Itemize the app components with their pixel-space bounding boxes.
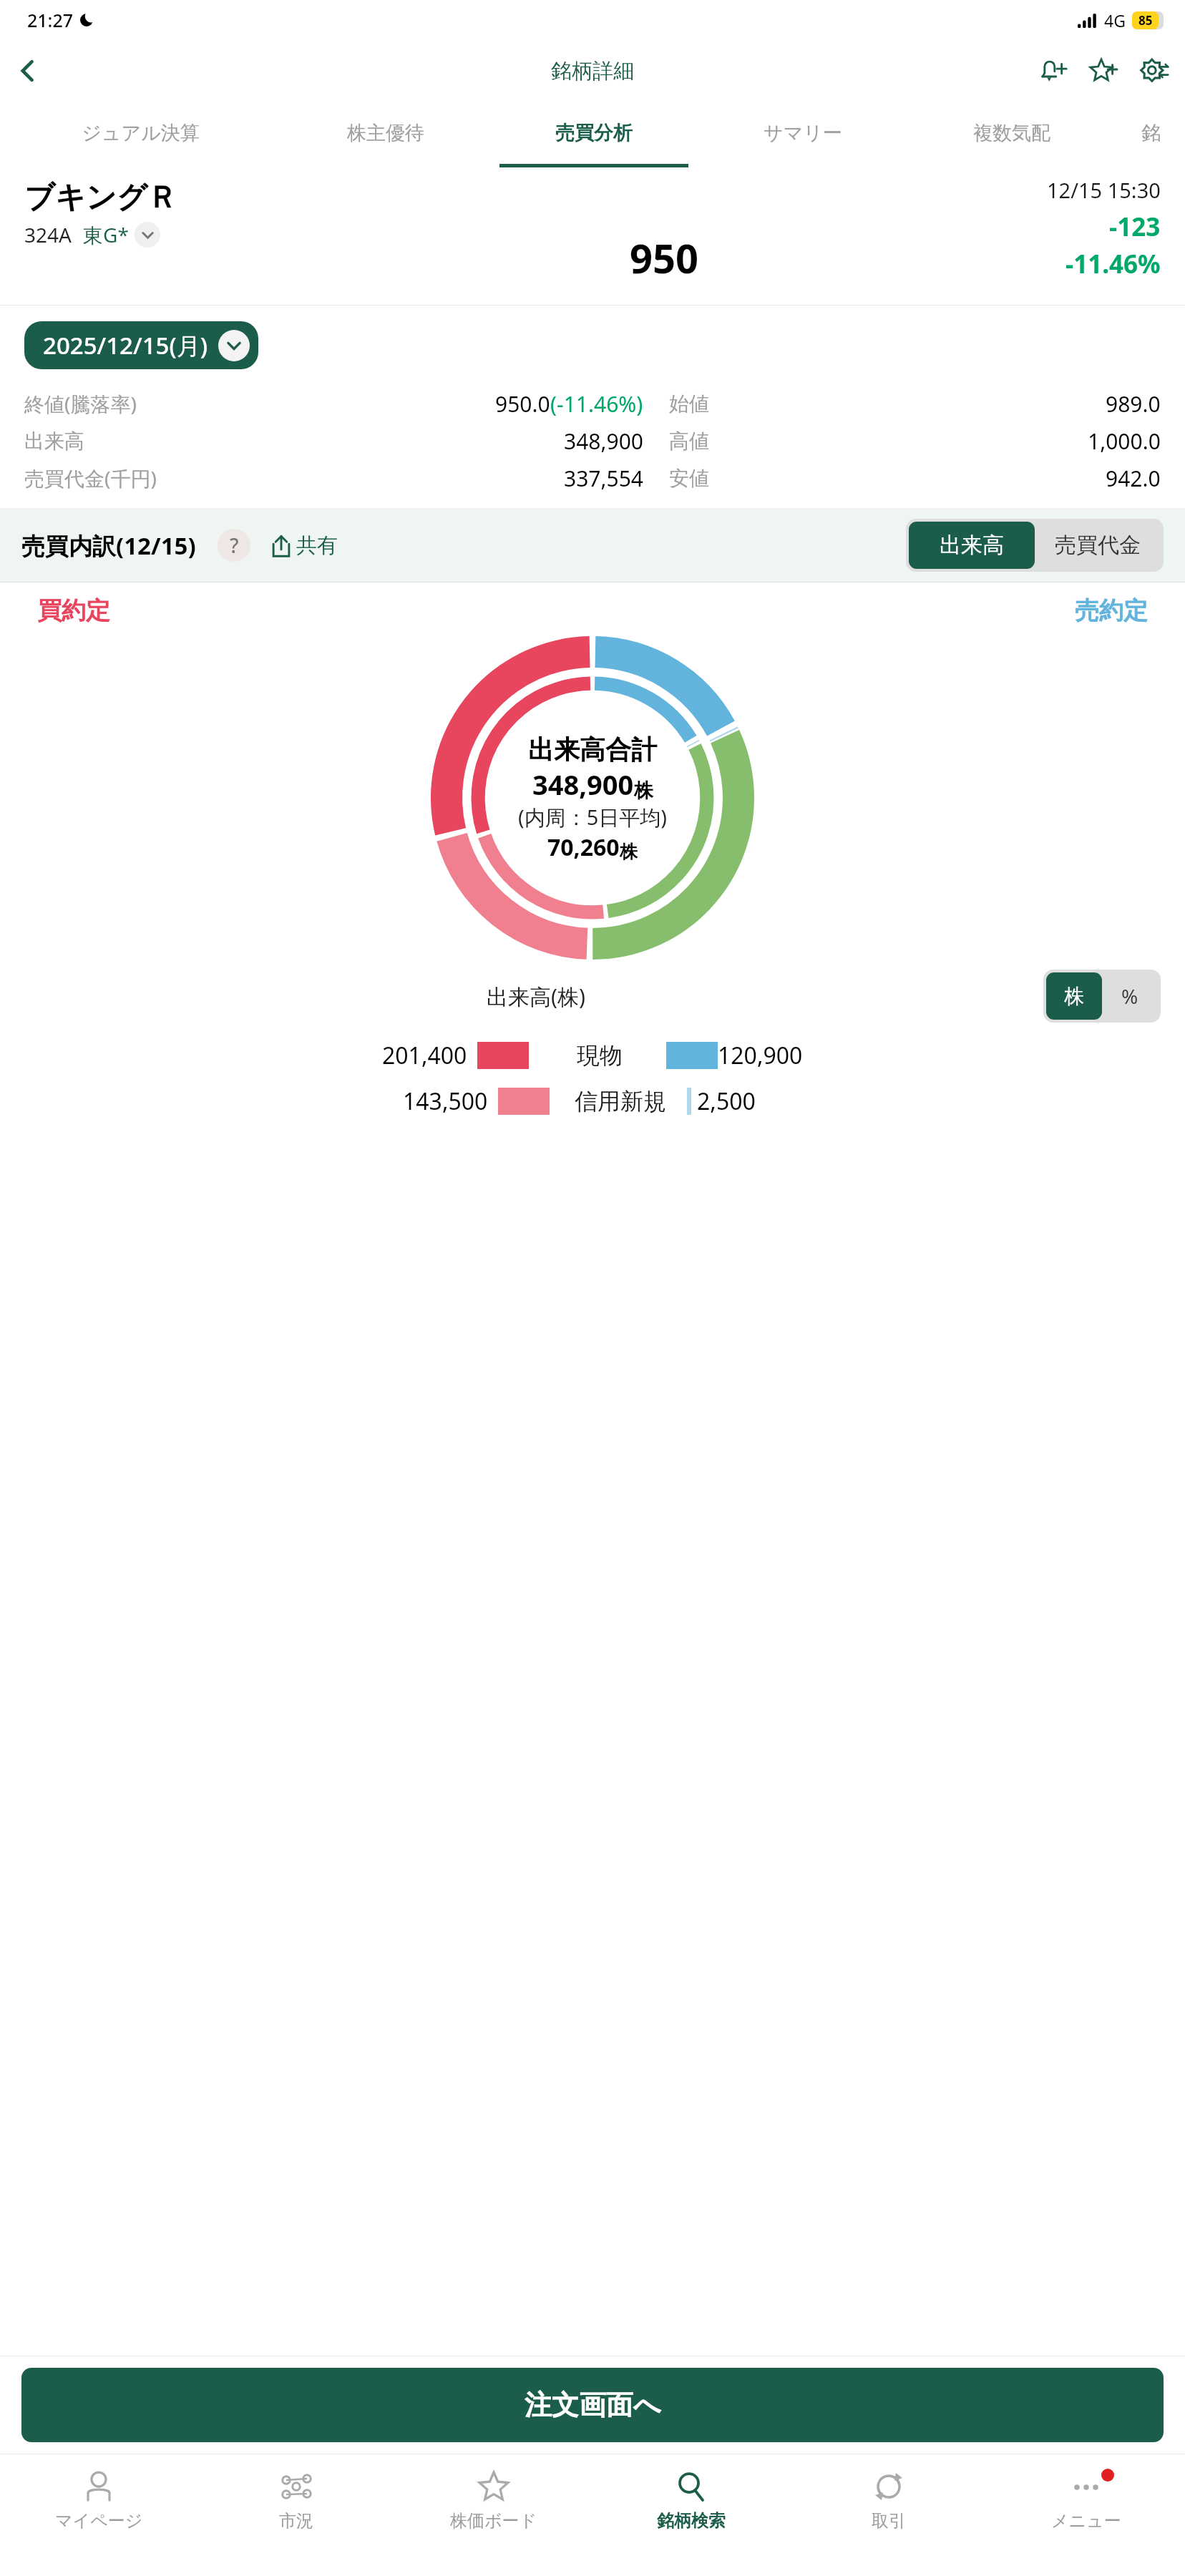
staticText: 出来高 xyxy=(24,429,239,454)
staticText: 終値(騰落率) xyxy=(24,390,239,417)
button[interactable]: ジュアル決算 xyxy=(0,102,281,167)
staticText: 2025/12/15(月) xyxy=(43,329,208,361)
staticText: 348,900 xyxy=(532,766,634,803)
staticText: ジュアル決算 xyxy=(82,121,200,145)
staticText: 株 xyxy=(620,841,638,863)
staticText: 942.0 xyxy=(1106,464,1161,493)
staticText: メニュー xyxy=(1051,2510,1121,2532)
staticText: 買約定 xyxy=(37,595,110,626)
staticText: 現物 xyxy=(577,1041,623,1070)
button[interactable]: 出来高 xyxy=(909,522,1035,569)
staticText: 989.0 xyxy=(1106,389,1161,419)
staticText: 85 xyxy=(1138,12,1153,29)
staticText: 東G* xyxy=(83,221,129,248)
staticText: 1,000.0 xyxy=(1088,426,1161,456)
button[interactable]: 株 xyxy=(1046,972,1102,1020)
staticText: 70,260 xyxy=(547,831,620,863)
button[interactable]: 複数気配 xyxy=(907,102,1116,167)
staticText: 銘柄検索 xyxy=(657,2510,726,2532)
button[interactable]: メニュー xyxy=(987,2454,1185,2576)
staticText: 市況 xyxy=(279,2510,313,2532)
button[interactable]: マイページ xyxy=(0,2454,197,2576)
staticText: (内周：5日平均) xyxy=(518,803,667,831)
button[interactable]: 注文画面へ xyxy=(21,2368,1164,2442)
button[interactable]: 取引 xyxy=(790,2454,987,2576)
button[interactable]: Add to watchlist xyxy=(1082,49,1126,93)
button[interactable]: 売買分析 xyxy=(489,102,698,167)
staticText: 348,900 xyxy=(564,426,643,456)
staticText: 950.0 xyxy=(495,389,550,419)
staticText: 株 xyxy=(1064,984,1084,1009)
staticText: 高値 xyxy=(669,429,776,454)
staticText: 信用新規 xyxy=(575,1087,666,1116)
staticText: 337,554 xyxy=(564,464,643,493)
staticText: ブキングＲ xyxy=(24,179,177,217)
staticText: 安値 xyxy=(669,466,776,491)
staticText: ? xyxy=(230,532,239,559)
staticText: 4G xyxy=(1104,9,1126,31)
staticText: -11.46% xyxy=(1065,247,1161,281)
staticText: 324A xyxy=(24,221,72,248)
staticText: 21:27 xyxy=(27,8,74,32)
staticText: -123 xyxy=(1109,210,1161,244)
staticText: 143,500 xyxy=(403,1085,488,1117)
button[interactable]: 株価ボード xyxy=(395,2454,592,2576)
button[interactable]: 株主優待 xyxy=(281,102,489,167)
staticText: 12/15 15:30 xyxy=(1047,176,1161,204)
staticText: マイページ xyxy=(55,2510,143,2532)
button[interactable]: % xyxy=(1102,972,1158,1020)
button[interactable]: 共有 xyxy=(265,528,342,563)
button[interactable]: Price alert xyxy=(1032,49,1076,93)
staticText: 売買代金 xyxy=(1055,532,1141,559)
button[interactable]: 売買代金 xyxy=(1035,522,1161,569)
button[interactable]: 市況 xyxy=(197,2454,395,2576)
staticText: 銘 xyxy=(1141,121,1161,145)
staticText: 株主優待 xyxy=(347,121,424,145)
staticText: 950 xyxy=(630,230,699,285)
staticText: 共有 xyxy=(296,532,338,559)
button[interactable]: サマリー xyxy=(698,102,907,167)
staticText: 売買代金(千円) xyxy=(24,464,239,492)
staticText: 銘柄詳細 xyxy=(551,58,634,84)
button[interactable]: 銘 xyxy=(1116,102,1185,167)
staticText: 出来高 xyxy=(940,532,1004,559)
staticText: 株 xyxy=(634,779,653,803)
button[interactable]: 2025/12/15(月) xyxy=(24,321,258,369)
staticText: 売買分析 xyxy=(555,121,633,145)
staticText: 株価ボード xyxy=(450,2510,537,2532)
staticText: 出来高(株) xyxy=(487,982,585,1011)
staticText: (-11.46%) xyxy=(550,389,643,419)
staticText: 120,900 xyxy=(718,1040,803,1071)
button[interactable]: 銘柄検索 xyxy=(592,2454,790,2576)
button[interactable]: Market info xyxy=(135,222,160,248)
staticText: 注文画面へ xyxy=(525,2388,661,2422)
button[interactable]: Help xyxy=(218,529,250,562)
staticText: 複数気配 xyxy=(973,121,1050,145)
staticText: 始値 xyxy=(669,391,776,416)
staticText: 売約定 xyxy=(1075,595,1148,626)
button[interactable]: Back xyxy=(7,50,49,92)
staticText: 取引 xyxy=(872,2510,906,2532)
staticText: 201,400 xyxy=(382,1040,467,1071)
staticText: サマリー xyxy=(764,121,842,145)
staticText: % xyxy=(1121,982,1138,1010)
staticText: 2,500 xyxy=(697,1085,756,1117)
button[interactable]: Settings xyxy=(1132,49,1176,93)
staticText: 売買内訳(12/15) xyxy=(21,530,196,562)
staticText: 出来高合計 xyxy=(528,733,657,766)
